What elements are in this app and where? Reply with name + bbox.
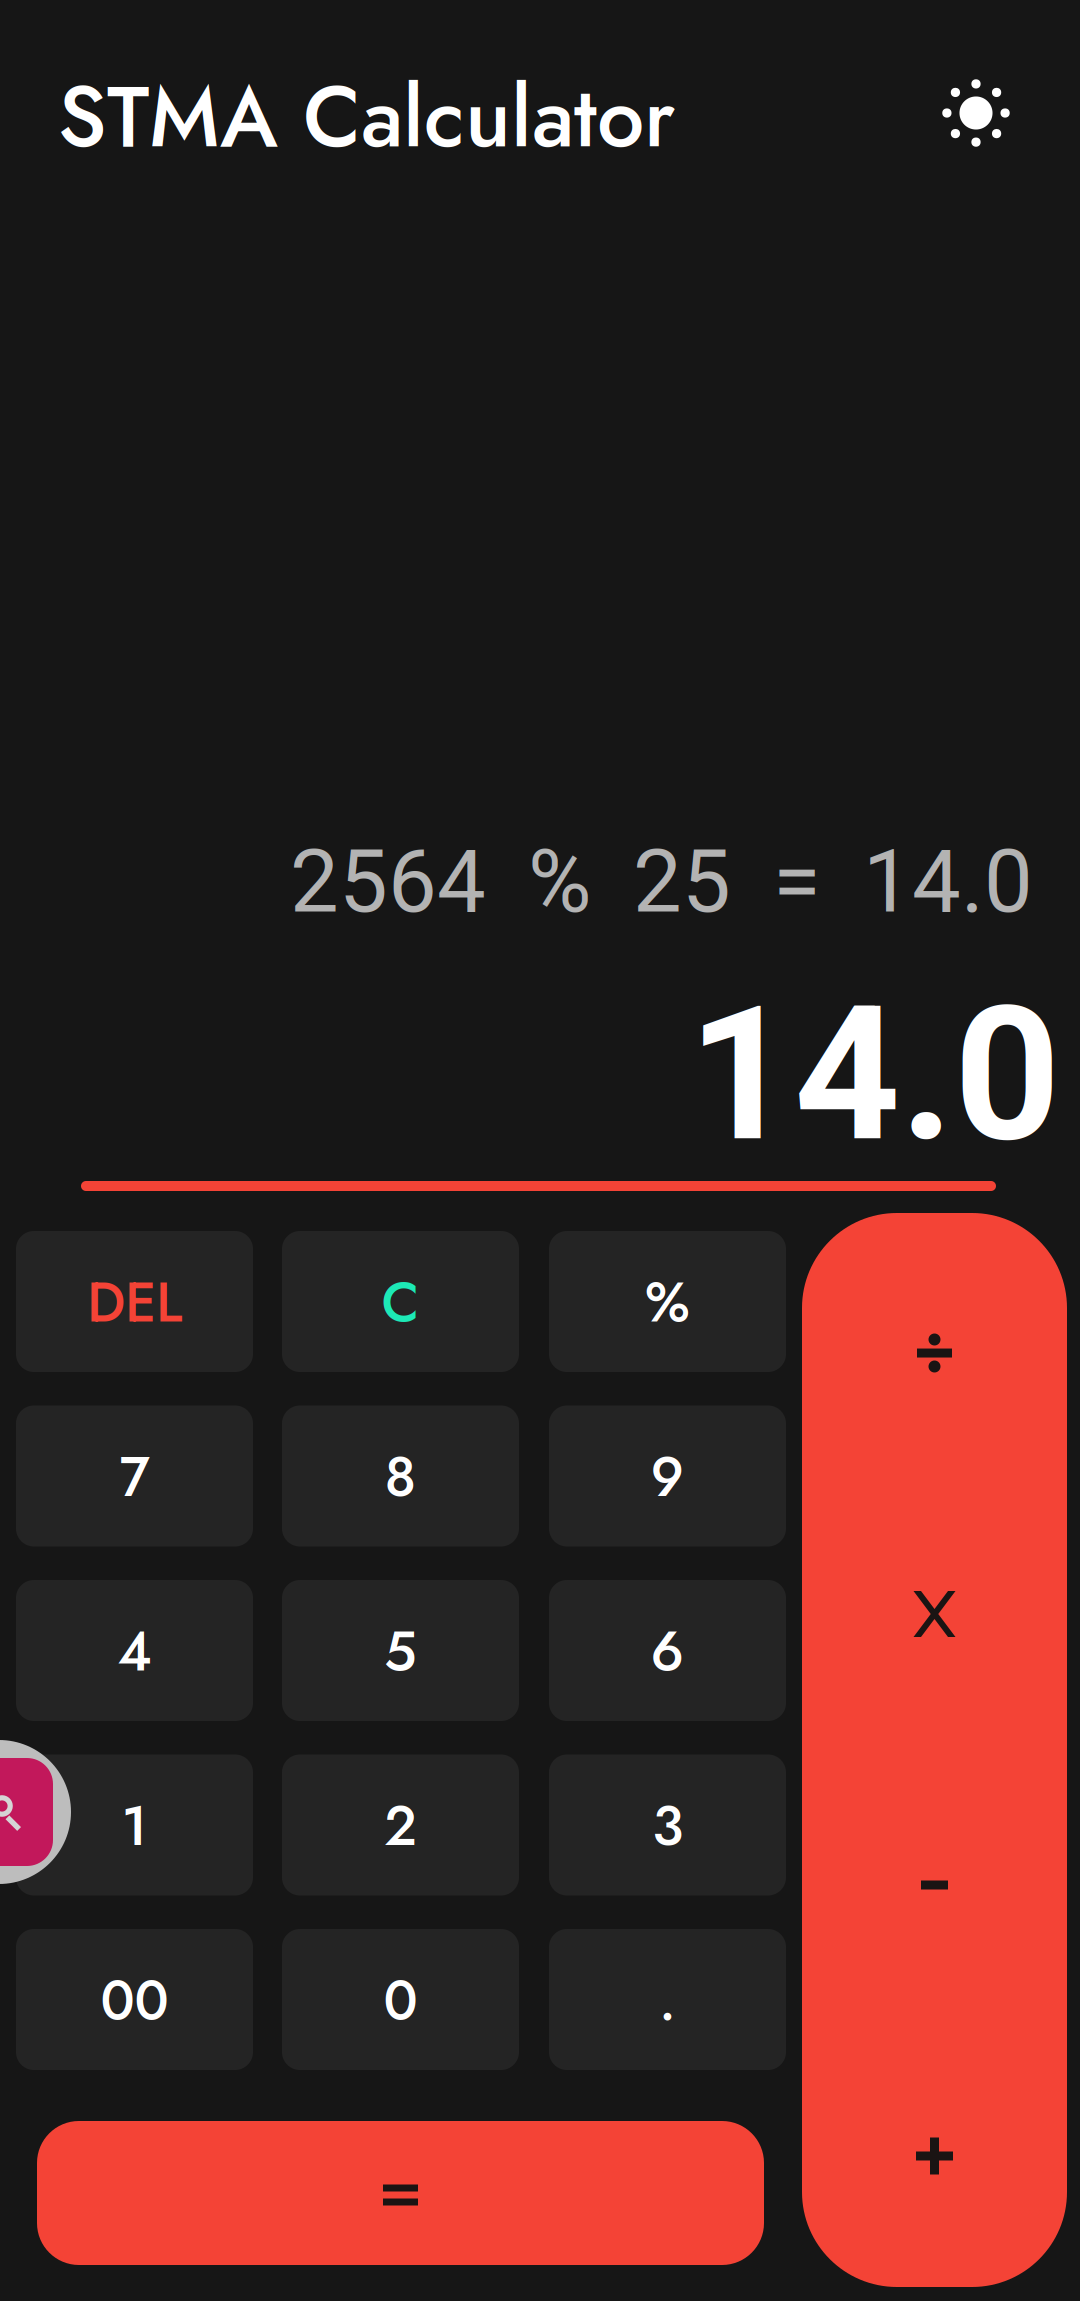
button[interactable]: 9 xyxy=(549,1405,786,1546)
staticText: 0 xyxy=(383,1961,417,2040)
staticText: 6 xyxy=(650,1612,684,1691)
button[interactable]: DEL xyxy=(16,1231,253,1372)
button[interactable]: 00 xyxy=(16,1929,253,2070)
button[interactable]: 6 xyxy=(549,1580,786,1721)
button[interactable]: 4 xyxy=(16,1580,253,1721)
staticText: DEL xyxy=(87,1263,182,1342)
button[interactable]: Toggle brightness xyxy=(916,53,1036,173)
button[interactable]: 3 xyxy=(549,1754,786,1895)
staticText: . xyxy=(659,1961,676,2040)
staticText: 4 xyxy=(117,1612,151,1691)
staticText: 1 xyxy=(121,1786,147,1865)
staticText: STMA Calculator xyxy=(58,56,675,178)
staticText: 2564 % 25 = 14.0 xyxy=(290,831,1033,933)
button[interactable]: Add xyxy=(802,2021,1067,2291)
staticText: 8 xyxy=(384,1437,416,1516)
button[interactable]: Subtract xyxy=(802,1750,1067,2020)
staticText: 9 xyxy=(650,1437,684,1516)
button[interactable]: Equals xyxy=(37,2121,764,2265)
button[interactable]: Multiply xyxy=(802,1479,1067,1749)
staticText: 3 xyxy=(652,1786,683,1865)
button[interactable]: 7 xyxy=(16,1405,253,1546)
staticText: 7 xyxy=(119,1437,149,1516)
button[interactable]: 0 xyxy=(282,1929,519,2070)
button[interactable]: 1 xyxy=(16,1754,253,1895)
button[interactable]: 2 xyxy=(282,1754,519,1895)
button[interactable]: 8 xyxy=(282,1405,519,1546)
staticText: 5 xyxy=(384,1612,417,1691)
staticText: 2 xyxy=(384,1786,417,1865)
button[interactable]: % xyxy=(549,1231,786,1372)
button[interactable]: Divide xyxy=(802,1218,1067,1488)
button[interactable]: . xyxy=(549,1929,786,2070)
button[interactable]: C xyxy=(282,1231,519,1372)
staticText: 14.0 xyxy=(688,966,1060,1184)
staticText: 00 xyxy=(100,1961,168,2040)
staticText: C xyxy=(381,1263,419,1342)
button[interactable]: 5 xyxy=(282,1580,519,1721)
staticText: % xyxy=(645,1263,690,1342)
